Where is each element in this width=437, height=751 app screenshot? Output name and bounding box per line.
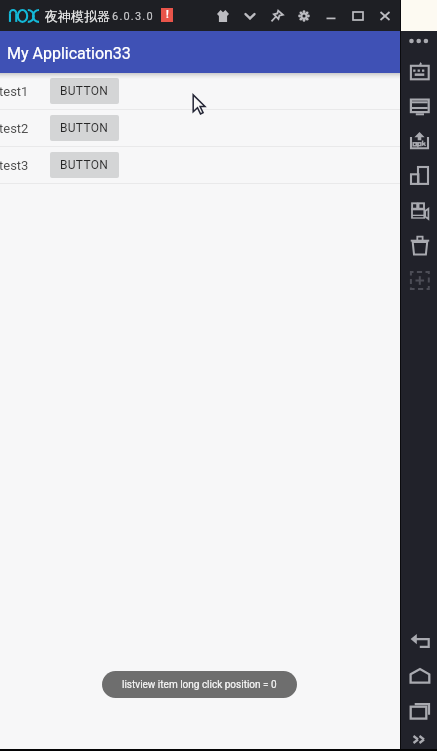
button[interactable]: BUTTON bbox=[50, 115, 119, 141]
staticText: ! bbox=[166, 9, 169, 21]
button[interactable]: Install APK bbox=[401, 123, 437, 158]
button[interactable]: Pin window on top bbox=[263, 0, 290, 31]
button[interactable]: BUTTON bbox=[50, 78, 119, 104]
button[interactable]: BUTTON bbox=[50, 152, 119, 178]
staticText: test1 bbox=[0, 84, 29, 99]
button[interactable]: Minimize bbox=[317, 0, 344, 31]
button[interactable]: Record video bbox=[401, 193, 437, 228]
button[interactable]: Keyboard bbox=[401, 53, 437, 88]
button[interactable]: More tools bbox=[401, 727, 437, 751]
button[interactable]: Settings bbox=[290, 0, 317, 31]
button[interactable]: Maximize bbox=[344, 0, 371, 31]
staticText: listview item long click position = 0 bbox=[122, 679, 277, 691]
button[interactable]: Change skin bbox=[209, 0, 236, 31]
button[interactable]: test3 bbox=[0, 147, 400, 183]
staticText: 夜神模拟器 bbox=[45, 8, 110, 24]
staticText: test2 bbox=[0, 121, 29, 136]
button[interactable]: Full screen bbox=[401, 263, 437, 298]
staticText: test3 bbox=[0, 158, 29, 173]
staticText: My Application33 bbox=[7, 44, 131, 63]
staticText: BUTTON bbox=[60, 84, 109, 98]
button[interactable]: Clean memory bbox=[401, 228, 437, 263]
button[interactable]: Recent apps bbox=[401, 693, 437, 727]
button[interactable]: Back bbox=[401, 623, 437, 658]
button[interactable]: Home bbox=[401, 658, 437, 693]
button[interactable]: More options bbox=[401, 31, 437, 51]
button[interactable]: test2 bbox=[0, 110, 400, 146]
staticText: BUTTON bbox=[60, 121, 109, 135]
staticText: 6.0.3.0 bbox=[112, 10, 154, 23]
button[interactable]: Close bbox=[371, 0, 398, 31]
staticText: BUTTON bbox=[60, 158, 109, 172]
button[interactable]: test1 bbox=[0, 73, 400, 109]
button[interactable]: Minimize to tray bbox=[236, 0, 263, 31]
button[interactable]: Performance bbox=[401, 158, 437, 193]
button[interactable]: Screen layout bbox=[401, 88, 437, 123]
